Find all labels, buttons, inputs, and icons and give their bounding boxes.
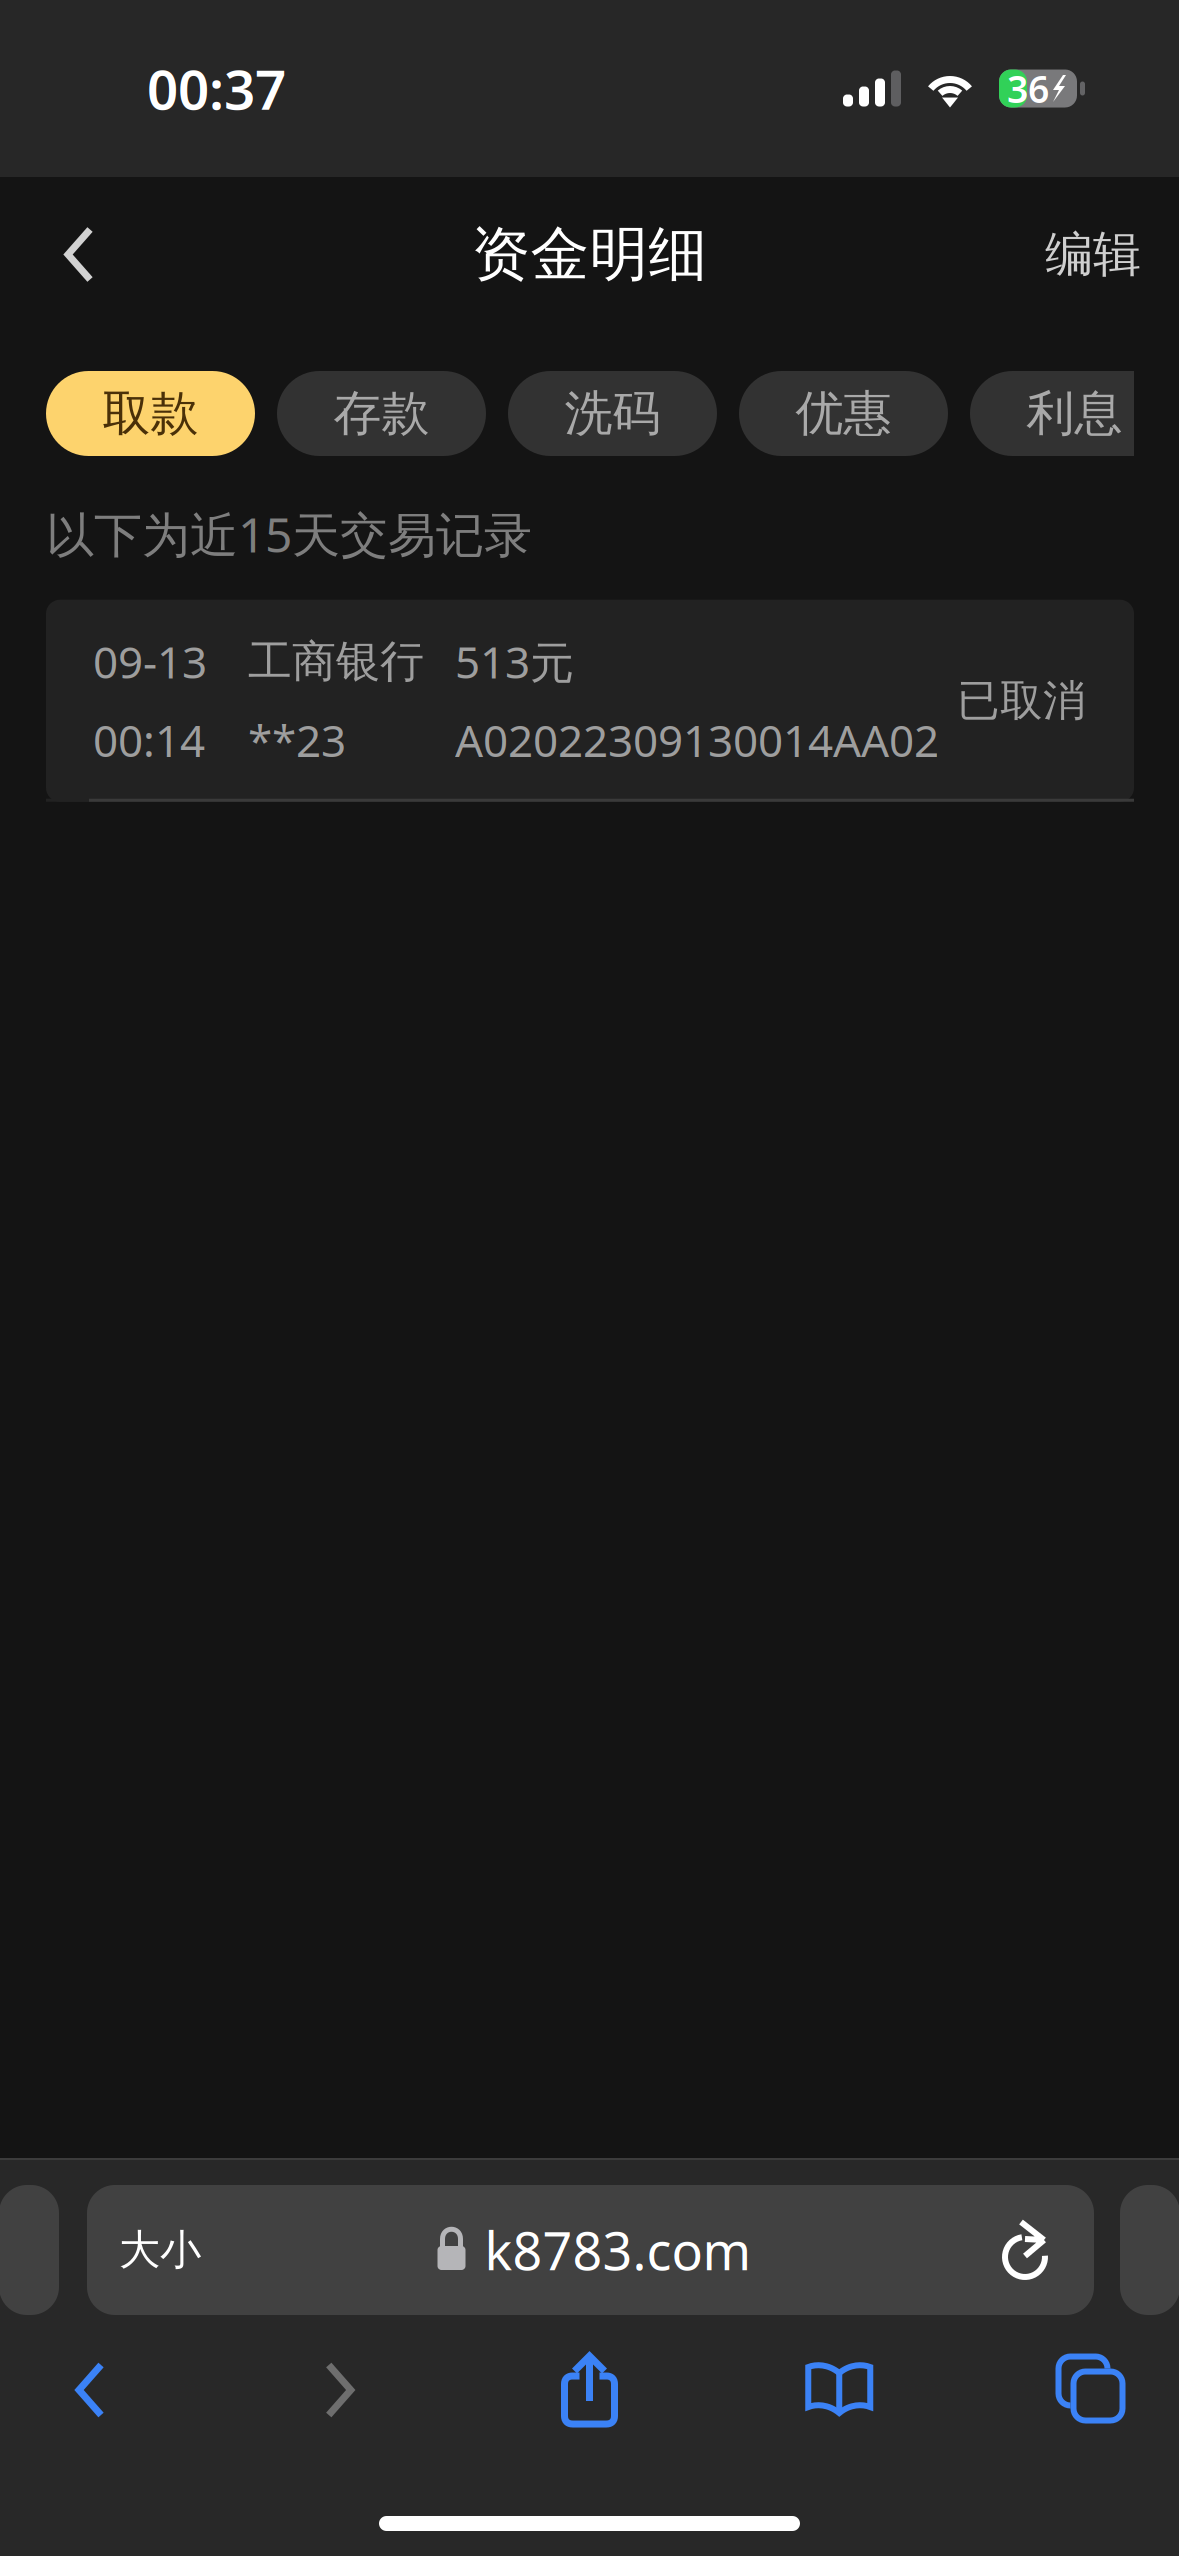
button[interactable]: Back: [30, 2335, 150, 2445]
staticText: 洗码: [564, 384, 660, 443]
staticText: 利息: [1026, 384, 1122, 443]
button[interactable]: 利息: [970, 371, 1179, 456]
button[interactable]: 洗码: [508, 371, 717, 456]
staticText: **23: [248, 711, 346, 769]
staticText: A02022309130014AA02: [455, 711, 939, 769]
button[interactable]: Bookmarks: [779, 2335, 899, 2445]
staticText: 已取消: [957, 674, 1086, 727]
staticText: 00:37: [147, 52, 286, 125]
button[interactable]: Reload: [976, 2185, 1078, 2315]
button[interactable]: 优惠: [739, 371, 948, 456]
button[interactable]: Forward: [280, 2335, 400, 2445]
staticText: 以下为近15天交易记录: [46, 502, 532, 566]
staticText: 00:14: [93, 711, 205, 769]
staticText: k8783.com: [484, 2215, 751, 2285]
button[interactable]: 大小: [87, 2185, 233, 2315]
button[interactable]: 编辑: [1025, 209, 1145, 300]
staticText: 资金明细: [471, 218, 707, 291]
staticText: 存款: [333, 384, 429, 443]
staticText: 36: [1007, 64, 1049, 113]
staticText: 大小: [119, 2225, 201, 2275]
button[interactable]: Share: [529, 2335, 649, 2445]
button[interactable]: 取款: [46, 371, 255, 456]
staticText: 编辑: [1045, 225, 1141, 284]
button[interactable]: 存款: [277, 371, 486, 456]
staticText: 09-13: [93, 632, 207, 691]
staticText: 取款: [102, 384, 198, 443]
button[interactable]: Back: [34, 209, 124, 299]
staticText: 优惠: [795, 384, 891, 443]
staticText: 513元: [455, 632, 574, 691]
staticText: 工商银行: [248, 634, 424, 688]
button[interactable]: Tabs: [1029, 2335, 1149, 2445]
